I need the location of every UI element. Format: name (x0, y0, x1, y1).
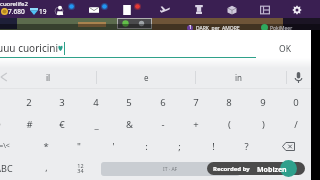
button[interactable]: Settings (290, 3, 304, 17)
staticText: / (294, 118, 298, 131)
button[interactable]: ! (198, 136, 228, 156)
button[interactable]: =\< (0, 136, 19, 156)
staticText: IT · AF (163, 166, 178, 173)
staticText: in (235, 72, 243, 83)
button[interactable]: ) (248, 114, 278, 134)
button[interactable]: € (47, 114, 77, 134)
button[interactable]: ABC (0, 158, 19, 178)
button[interactable]: & (114, 114, 144, 134)
staticText: * (43, 140, 49, 153)
button[interactable]: Travel (158, 3, 172, 17)
staticText: ! (212, 140, 215, 153)
button[interactable]: 6 (148, 92, 178, 112)
staticText: _ (94, 118, 99, 131)
button[interactable]: 12 34 (71, 161, 89, 175)
button[interactable]: _ (81, 114, 111, 134)
button[interactable]: 8 (214, 92, 244, 112)
staticText: 5 (126, 96, 132, 109)
staticText: Mobizen (257, 165, 287, 175)
staticText: ; (178, 140, 181, 153)
staticText: 7.680 (8, 7, 25, 16)
button[interactable]: 3 (47, 92, 77, 112)
staticText: & (126, 118, 133, 131)
button[interactable]: 0 (281, 92, 311, 112)
staticText: 1 (189, 24, 192, 31)
staticText: € (59, 118, 65, 131)
staticText: 8 (226, 96, 232, 109)
button[interactable]: 9 (248, 92, 278, 112)
staticText: 4 (93, 96, 99, 109)
button[interactable]: Messages (87, 3, 101, 17)
button[interactable]: 4 (81, 92, 111, 112)
button[interactable]: / (281, 114, 311, 134)
staticText: =\< (0, 141, 10, 151)
button[interactable]: * (31, 136, 61, 156)
staticText: - (161, 118, 165, 131)
button[interactable]: News (120, 3, 134, 17)
staticText: e (144, 72, 149, 83)
staticText: ( (228, 118, 231, 131)
staticText: ' (112, 140, 115, 153)
staticText: Recorded by (213, 165, 250, 173)
button[interactable]: Inventory (225, 3, 239, 17)
button[interactable]: Shop (258, 3, 272, 17)
button[interactable]: e (124, 68, 168, 86)
staticText: 9 (260, 96, 266, 109)
staticText: uuu cuoricini (0, 41, 59, 55)
button[interactable]: Space (101, 162, 240, 176)
staticText: " (77, 140, 81, 153)
staticText: + (193, 118, 199, 131)
staticText: DARK per AMORE (196, 25, 240, 32)
button[interactable]: ( (214, 114, 244, 134)
staticText: # (26, 118, 33, 131)
staticText: ? (244, 140, 249, 153)
button[interactable]: # (14, 114, 44, 134)
staticText: 2 (26, 96, 32, 109)
button[interactable]: il (26, 68, 70, 86)
staticText: 6 (160, 96, 166, 109)
button[interactable]: - (148, 114, 178, 134)
staticText: @ (0, 118, 1, 131)
button[interactable]: . (231, 158, 261, 178)
button[interactable]: 5 (114, 92, 144, 112)
staticText: : (145, 140, 148, 153)
staticText: 0 (293, 96, 299, 109)
staticText: 7 (193, 96, 199, 109)
button[interactable]: Backspace (279, 139, 297, 153)
button[interactable]: ; (164, 136, 194, 156)
button[interactable]: ' (98, 136, 128, 156)
staticText: , (45, 162, 48, 174)
button[interactable]: , (31, 158, 61, 178)
staticText: il (46, 72, 51, 83)
staticText: ABC (0, 162, 13, 174)
button[interactable]: " (64, 136, 94, 156)
button[interactable]: 7 (181, 92, 211, 112)
staticText: PokiMeer (270, 25, 293, 32)
button[interactable]: Trophies (192, 3, 206, 17)
button[interactable]: Friends (53, 3, 67, 17)
staticText: OK (279, 43, 291, 55)
button[interactable]: Voice input (291, 69, 306, 86)
staticText: . (245, 162, 248, 174)
staticText: ) (262, 118, 265, 131)
staticText: 19 (39, 7, 47, 16)
staticText: 12 34 (77, 162, 84, 175)
button[interactable]: ? (231, 136, 261, 156)
staticText: cuorelife2 (0, 0, 28, 8)
button[interactable]: OK (268, 42, 302, 56)
button[interactable]: + (181, 114, 211, 134)
button[interactable]: : (131, 136, 161, 156)
staticText: 3 (59, 96, 65, 109)
button[interactable]: 2 (14, 92, 44, 112)
button[interactable]: in (217, 68, 261, 86)
